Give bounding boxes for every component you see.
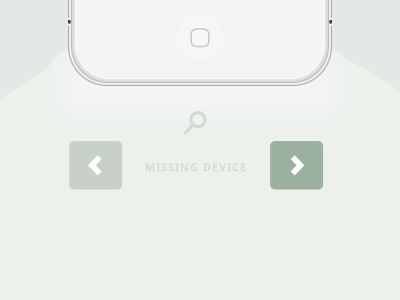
button[interactable]: Next device — [270, 141, 323, 190]
staticText: MISSING DEVICE — [145, 160, 246, 174]
button[interactable]: Previous device — [69, 141, 122, 190]
